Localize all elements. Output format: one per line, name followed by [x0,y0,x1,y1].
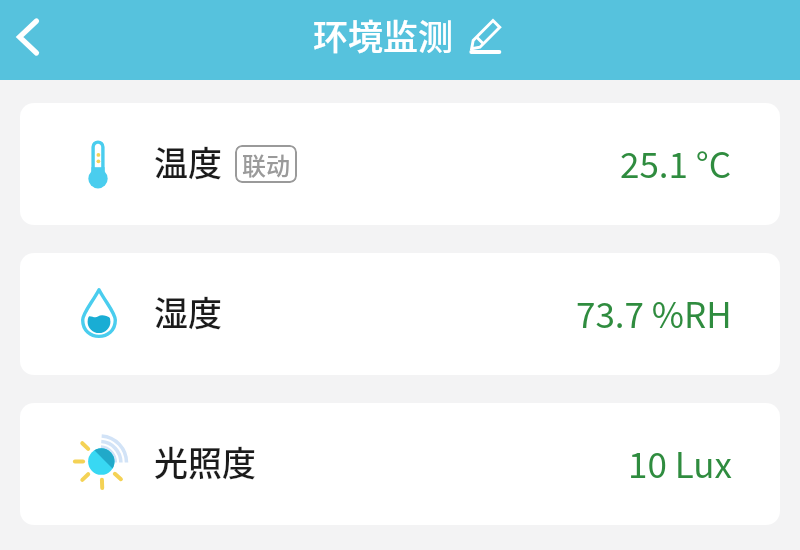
button[interactable]: 光照度 [20,403,780,525]
staticText: 温度 [154,137,222,186]
staticText: 环境监测 [313,9,454,60]
button[interactable]: 温度 [20,103,780,225]
staticText: 光照度 [154,437,256,486]
button[interactable]: 湿度 [20,253,780,375]
staticText: 湿度 [154,287,222,336]
staticText: 73.7 %RH [576,287,732,338]
button[interactable]: Edit [468,21,501,54]
staticText: 联动 [242,147,290,182]
staticText: 10 Lux [628,437,732,488]
staticText: 25.1 °C [620,137,732,188]
button[interactable]: Back [0,9,56,65]
